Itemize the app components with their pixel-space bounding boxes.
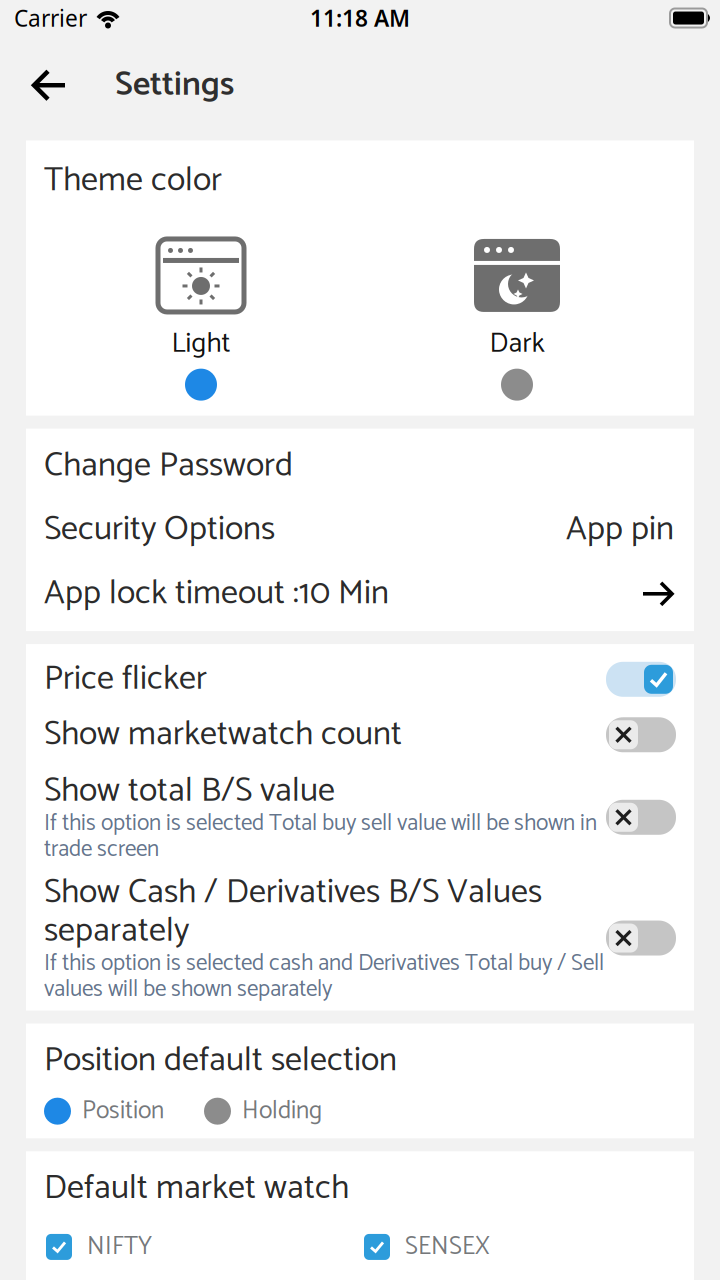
staticText: App pin: [566, 511, 674, 549]
staticText: If this option is selected cash and Deri…: [44, 950, 604, 1003]
staticText: Show Cash / Derivatives B/S Values separ…: [44, 873, 542, 950]
staticText: If this option is selected Total buy sel…: [44, 810, 597, 863]
staticText: Position default selection: [44, 1042, 397, 1080]
staticText: App lock timeout :10 Min: [44, 575, 389, 613]
button[interactable]: Off: [606, 800, 676, 835]
staticText: Show total B/S value: [44, 772, 335, 810]
staticText: Settings: [115, 66, 234, 104]
button[interactable]: Security Options: [26, 485, 694, 549]
staticText: Light: [171, 328, 230, 360]
staticText: Position: [82, 1097, 164, 1125]
button[interactable]: On: [606, 662, 676, 697]
button[interactable]: Position: [44, 1097, 164, 1125]
button[interactable]: Back: [0, 69, 66, 101]
staticText: Theme color: [44, 161, 222, 200]
button[interactable]: Dark: [437, 239, 597, 401]
button[interactable]: App lock timeout :10 Min: [26, 549, 694, 631]
staticText: 11:18 AM: [310, 3, 410, 33]
staticText: SENSEX: [405, 1233, 490, 1261]
staticText: Price flicker: [44, 660, 207, 699]
staticText: Change Password: [44, 447, 293, 485]
staticText: Default market watch: [44, 1169, 349, 1208]
staticText: Dark: [489, 328, 544, 360]
button[interactable]: Holding: [204, 1097, 322, 1125]
staticText: Security Options: [44, 511, 275, 549]
button[interactable]: Off: [606, 920, 676, 955]
staticText: NIFTY: [87, 1233, 152, 1261]
staticText: Carrier: [14, 3, 87, 33]
staticText: Show marketwatch count: [44, 715, 402, 754]
button[interactable]: Change Password: [26, 429, 694, 485]
button[interactable]: Off: [606, 717, 676, 752]
staticText: Holding: [242, 1097, 322, 1125]
button[interactable]: SENSEX: [364, 1233, 490, 1261]
button[interactable]: NIFTY: [46, 1233, 152, 1261]
button[interactable]: Light: [121, 239, 281, 401]
